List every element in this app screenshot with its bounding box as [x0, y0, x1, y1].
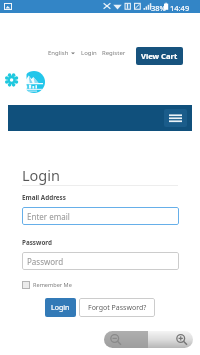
staticText: Remember Me: [33, 281, 72, 289]
staticText: Login: [51, 303, 70, 313]
button[interactable]: Login: [81, 49, 97, 57]
button[interactable]: Login: [45, 298, 76, 317]
staticText: 14:49: [170, 3, 190, 13]
button[interactable]: Remember Me: [22, 281, 72, 289]
staticText: Login: [22, 165, 60, 185]
staticText: Enter email: [27, 211, 70, 222]
staticText: 38%: [151, 3, 166, 13]
button[interactable]: View Cart: [136, 47, 183, 65]
button[interactable]: Forgot Password?: [79, 298, 155, 317]
other: Site logo: [0, 64, 52, 100]
staticText: Password: [27, 256, 64, 267]
staticText: Email Address: [22, 193, 66, 202]
button[interactable]: Enter email: [22, 207, 179, 225]
button[interactable]: Register: [102, 49, 126, 57]
staticText: View Cart: [141, 51, 178, 61]
staticText: English: [48, 49, 69, 57]
staticText: Forgot Password?: [88, 303, 147, 313]
button[interactable]: Menu: [164, 109, 187, 127]
staticText: Password: [22, 238, 52, 247]
button[interactable]: Password: [22, 252, 179, 270]
button[interactable]: Zoom out: [104, 331, 148, 348]
button[interactable]: English: [48, 49, 75, 57]
button[interactable]: Zoom in: [148, 331, 193, 348]
